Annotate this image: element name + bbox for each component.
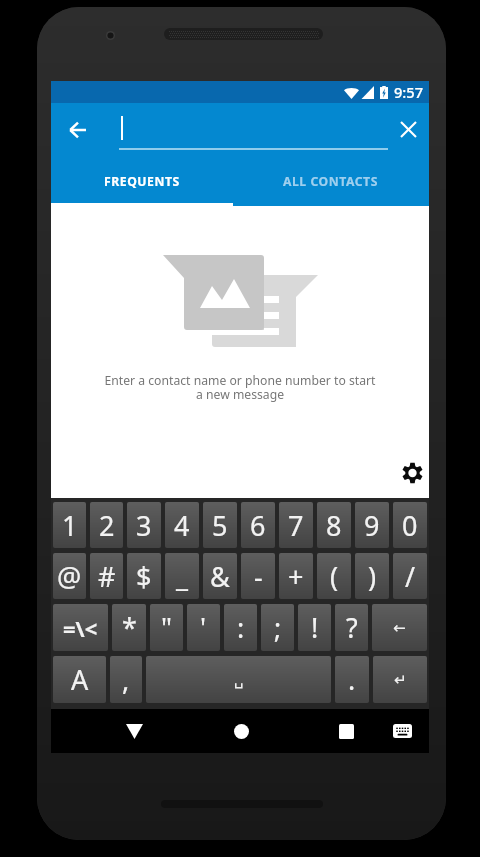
staticText: 3 [136, 507, 152, 544]
button[interactable]: ↵ [373, 656, 427, 703]
button[interactable]: Settings [395, 456, 429, 490]
button[interactable]: 7 [279, 502, 313, 548]
staticText: & [210, 558, 230, 595]
button[interactable]: : [224, 604, 257, 651]
staticText: * [122, 609, 137, 646]
staticText: ( [330, 558, 339, 595]
staticText: . [348, 661, 356, 698]
staticText: Enter a contact name or phone number to … [51, 372, 429, 403]
button[interactable]: 3 [127, 502, 161, 548]
staticText: 9 [364, 507, 380, 544]
button[interactable]: ← [372, 604, 427, 651]
button[interactable]: Back [55, 108, 99, 152]
button[interactable]: , [110, 656, 142, 703]
staticText: 9:57 [394, 82, 424, 102]
staticText: / [405, 558, 416, 595]
staticText: 5 [212, 507, 228, 544]
button[interactable]: @ [53, 553, 86, 599]
button[interactable]: ( [317, 553, 351, 599]
button[interactable]: ? [335, 604, 368, 651]
button[interactable]: " [150, 604, 183, 651]
button[interactable]: $ [127, 553, 161, 599]
staticText: - [254, 558, 263, 595]
staticText: ) [368, 558, 377, 595]
button[interactable]: * [112, 604, 146, 651]
button[interactable]: A [53, 656, 106, 703]
button[interactable]: _ [165, 553, 199, 599]
staticText: 4 [174, 507, 190, 544]
button[interactable]: =\< [53, 604, 108, 651]
staticText: 8 [326, 507, 342, 544]
button[interactable]: ' [187, 604, 220, 651]
staticText: A [71, 661, 89, 698]
staticText: ' [200, 609, 207, 646]
staticText: _ [176, 558, 188, 595]
staticText: ! [311, 609, 319, 646]
staticText: , [122, 661, 130, 698]
button[interactable]: ␣ [146, 656, 331, 703]
button[interactable]: Home [213, 709, 269, 753]
staticText: 7 [288, 507, 304, 544]
button[interactable]: Back [106, 709, 162, 753]
button[interactable]: Switch keyboard [378, 709, 426, 753]
button[interactable]: 1 [53, 502, 86, 548]
staticText: " [161, 609, 173, 646]
button[interactable]: 8 [317, 502, 351, 548]
button[interactable]: # [90, 553, 123, 599]
button[interactable]: Recents [318, 709, 374, 753]
button[interactable]: ) [355, 553, 389, 599]
staticText: ; [274, 609, 282, 646]
staticText: : [237, 609, 245, 646]
staticText: # [98, 558, 116, 595]
staticText: + [288, 558, 304, 595]
button[interactable]: - [241, 553, 275, 599]
staticText: ↵ [394, 671, 407, 688]
staticText: ALL CONTACTS [283, 173, 378, 190]
staticText: 2 [99, 507, 115, 544]
button[interactable]: ALL CONTACTS [232, 160, 429, 206]
staticText: =\< [63, 613, 98, 643]
staticText: ? [346, 609, 358, 646]
staticText: 6 [250, 507, 266, 544]
button[interactable]: 5 [203, 502, 237, 548]
staticText: ␣ [234, 671, 244, 688]
button[interactable]: . [335, 656, 369, 703]
staticText: 1 [62, 507, 78, 544]
button[interactable]: & [203, 553, 237, 599]
button[interactable]: ; [261, 604, 294, 651]
staticText: ← [393, 619, 406, 636]
staticText: @ [57, 558, 82, 595]
button[interactable]: 0 [393, 502, 427, 548]
button[interactable]: Clear [386, 107, 430, 151]
staticText: $ [136, 558, 152, 595]
button[interactable]: / [393, 553, 427, 599]
button[interactable]: 9 [355, 502, 389, 548]
staticText: FREQUENTS [104, 173, 180, 190]
button[interactable]: FREQUENTS [51, 160, 232, 206]
button[interactable]: 6 [241, 502, 275, 548]
button[interactable]: + [279, 553, 313, 599]
button[interactable]: 4 [165, 502, 199, 548]
button[interactable]: 2 [90, 502, 123, 548]
button[interactable]: ! [298, 604, 331, 651]
staticText: 0 [402, 507, 418, 544]
